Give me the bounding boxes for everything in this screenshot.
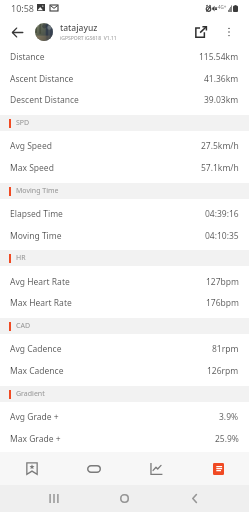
button[interactable]: Share: [189, 20, 213, 44]
staticText: tatajayuz: [60, 22, 98, 34]
staticText: SPD: [16, 118, 30, 128]
staticText: 3.9%: [219, 411, 239, 423]
button[interactable]: Avg Cadence: [0, 338, 249, 360]
button[interactable]: Bookmarks: [0, 452, 63, 485]
button[interactable]: Back: [178, 485, 210, 512]
button[interactable]: Summary: [187, 452, 249, 485]
staticText: 4G+: [218, 4, 227, 10]
button[interactable]: Max Speed: [0, 157, 249, 179]
button[interactable]: More options: [217, 20, 241, 44]
button[interactable]: Home: [108, 485, 140, 512]
staticText: iGPSPORT iGS618 V1.11: [60, 35, 117, 42]
staticText: 81rpm: [212, 343, 239, 355]
staticText: Max Cadence: [10, 365, 64, 377]
staticText: 57.1km/h: [201, 162, 239, 174]
staticText: Moving Time: [10, 230, 62, 242]
staticText: Moving Time: [16, 186, 59, 196]
other: Profile photo: [35, 23, 53, 41]
staticText: 04:39:16: [205, 208, 239, 220]
button[interactable]: Avg Heart Rate: [0, 271, 249, 293]
button[interactable]: Elapsed Time: [0, 203, 249, 225]
staticText: 25.9%: [215, 433, 239, 445]
staticText: Max Speed: [10, 162, 54, 174]
staticText: 10:58: [11, 2, 35, 14]
staticText: 115.54km: [199, 51, 239, 63]
staticText: 127bpm: [206, 276, 239, 288]
staticText: 41.36km: [204, 73, 239, 85]
staticText: Avg Grade +: [10, 411, 59, 423]
staticText: Avg Heart Rate: [10, 276, 70, 288]
staticText: Max Heart Rate: [10, 297, 72, 309]
staticText: 04:10:35: [205, 230, 239, 242]
button[interactable]: Chart: [125, 452, 187, 485]
staticText: Ascent Distance: [10, 73, 74, 85]
staticText: 126rpm: [207, 365, 239, 377]
button[interactable]: Max Grade +: [0, 428, 249, 450]
button[interactable]: Ascent Distance: [0, 68, 249, 90]
staticText: CAD: [16, 321, 31, 331]
button[interactable]: Back: [5, 20, 29, 44]
button[interactable]: Distance: [0, 46, 249, 68]
staticText: Avg Speed: [10, 140, 52, 152]
staticText: HR: [16, 253, 26, 263]
button[interactable]: Descent Distance: [0, 89, 249, 111]
staticText: Max Grade +: [10, 433, 61, 445]
button[interactable]: Avg Speed: [0, 135, 249, 157]
staticText: Elapsed Time: [10, 208, 63, 220]
button[interactable]: Max Cadence: [0, 360, 249, 382]
staticText: Descent Distance: [10, 94, 79, 106]
staticText: 176bpm: [206, 297, 239, 309]
button[interactable]: Moving Time: [0, 225, 249, 247]
button[interactable]: Route: [63, 452, 125, 485]
button[interactable]: Recent apps: [38, 485, 70, 512]
staticText: 27.5km/h: [201, 140, 239, 152]
staticText: Avg Cadence: [10, 343, 62, 355]
staticText: Distance: [10, 51, 45, 63]
button[interactable]: Max Heart Rate: [0, 292, 249, 314]
button[interactable]: Avg Grade +: [0, 406, 249, 428]
staticText: Gradient: [16, 389, 45, 399]
staticText: 39.03km: [204, 94, 239, 106]
